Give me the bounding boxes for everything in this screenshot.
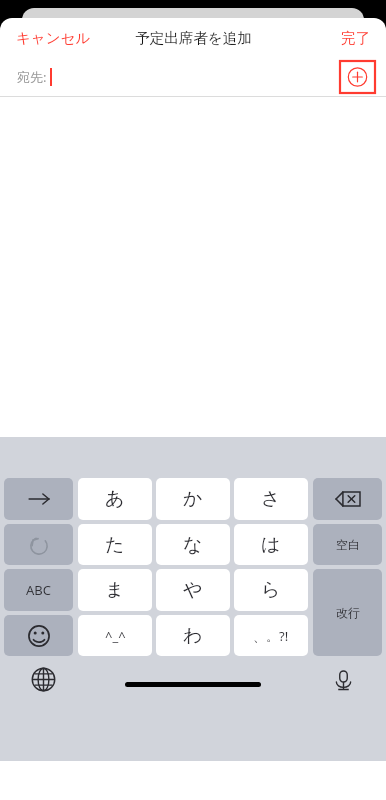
button[interactable]: 改行: [313, 569, 382, 656]
staticText: ら: [261, 578, 281, 602]
button[interactable]: ^_^: [78, 615, 152, 656]
button[interactable]: キャンセル: [0, 23, 101, 53]
staticText: た: [105, 533, 125, 557]
button[interactable]: 絵文字: [4, 615, 73, 656]
staticText: 予定出席者を追加: [135, 29, 252, 47]
staticText: 改行: [336, 605, 360, 620]
button[interactable]: あ: [78, 478, 152, 520]
staticText: や: [183, 578, 203, 602]
staticText: な: [183, 533, 203, 557]
button[interactable]: 、。?!: [234, 615, 308, 656]
staticText: ^_^: [105, 627, 126, 645]
staticText: 完了: [341, 29, 370, 47]
button[interactable]: な: [156, 524, 230, 565]
other: 取り消し: [27, 533, 51, 557]
staticText: ま: [105, 578, 125, 602]
button[interactable]: 削除: [313, 478, 382, 520]
staticText: か: [183, 487, 203, 511]
button[interactable]: ABC: [4, 569, 73, 611]
button[interactable]: 連絡先を追加: [340, 61, 375, 93]
button[interactable]: ら: [234, 569, 308, 611]
other: 次の候補: [26, 486, 52, 512]
staticText: キャンセル: [16, 29, 91, 47]
button[interactable]: 空白: [313, 524, 382, 565]
button[interactable]: は: [234, 524, 308, 565]
other: 絵文字: [27, 624, 51, 648]
staticText: さ: [261, 487, 281, 511]
button[interactable]: 次の候補: [4, 478, 73, 520]
staticText: あ: [105, 487, 125, 511]
other: 削除: [333, 484, 363, 514]
button[interactable]: 音声入力: [324, 660, 362, 698]
button[interactable]: キーボードを切り替え: [24, 660, 62, 698]
button[interactable]: 取り消し: [4, 524, 73, 565]
staticText: 、。?!: [253, 627, 289, 645]
staticText: わ: [183, 624, 203, 648]
button[interactable]: わ: [156, 615, 230, 656]
button[interactable]: や: [156, 569, 230, 611]
button[interactable]: た: [78, 524, 152, 565]
button[interactable]: さ: [234, 478, 308, 520]
staticText: ABC: [26, 581, 51, 599]
button[interactable]: ま: [78, 569, 152, 611]
button[interactable]: 完了: [331, 23, 386, 53]
staticText: 宛先:: [17, 68, 47, 86]
button[interactable]: か: [156, 478, 230, 520]
staticText: 空白: [336, 537, 360, 552]
staticText: は: [261, 533, 281, 557]
